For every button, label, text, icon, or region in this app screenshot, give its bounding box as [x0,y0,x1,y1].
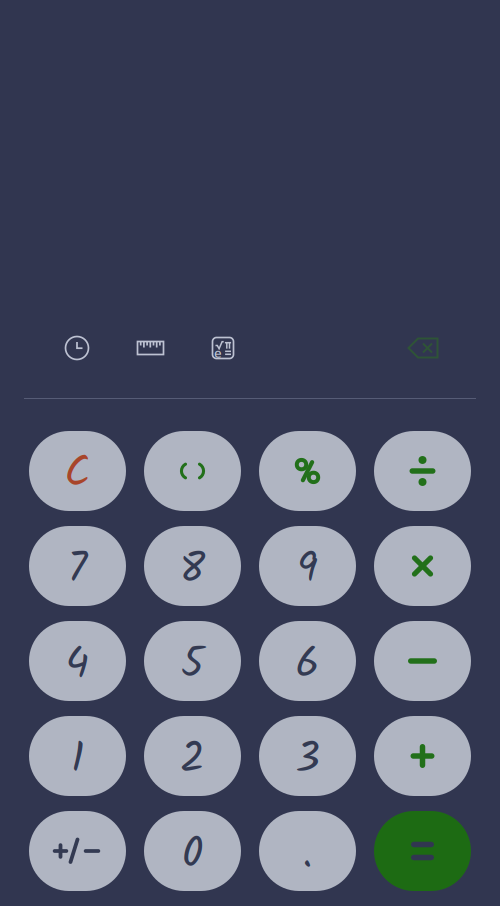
button[interactable]: 5 [144,621,241,701]
staticText: 9 [297,536,318,604]
button[interactable]: 2 [144,716,241,796]
staticText: 5 [181,631,204,699]
button[interactable]: Scientific functions [211,336,235,360]
button[interactable]: 1 [29,716,126,796]
staticText: 3 [295,726,319,794]
button[interactable]: 6 [259,621,356,701]
button[interactable]: Minus [374,621,471,701]
button[interactable]: Multiply [374,526,471,606]
staticText: e [214,344,222,361]
button[interactable]: 7 [29,526,126,606]
staticText: 0 [182,821,203,889]
button[interactable]: Plus minus [29,811,126,891]
button[interactable]: Unit converter [136,336,165,360]
button[interactable]: 9 [259,526,356,606]
staticText: . [302,821,312,889]
button[interactable]: Delete [407,336,439,360]
button[interactable]: Equals [374,811,471,891]
button[interactable]: 8 [144,526,241,606]
button[interactable]: C [29,431,126,511]
button[interactable]: 4 [29,621,126,701]
button[interactable]: Percent [259,431,356,511]
staticText: 2 [180,726,205,794]
staticText: 8 [179,536,205,604]
staticText: 7 [67,536,87,604]
button[interactable]: 0 [144,811,241,891]
staticText: C [64,440,90,508]
staticText: 1 [71,726,84,794]
button[interactable]: Plus [374,716,471,796]
staticText: 6 [295,631,319,699]
button[interactable]: Divide [374,431,471,511]
button[interactable]: . [259,811,356,891]
button[interactable]: 3 [259,716,356,796]
button[interactable]: History [65,336,89,360]
staticText: 4 [65,631,89,699]
button[interactable]: Parentheses [144,431,241,511]
